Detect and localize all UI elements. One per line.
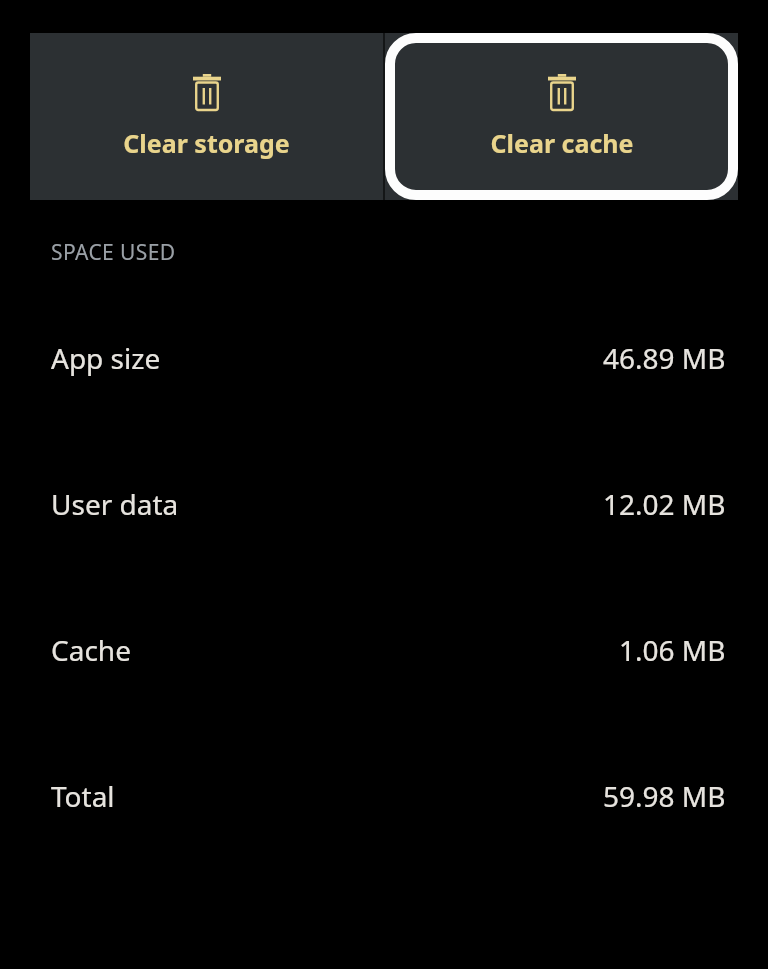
- staticText: Clear cache: [490, 126, 634, 160]
- button[interactable]: Clear cache: [385, 33, 738, 200]
- staticText: Total: [51, 777, 115, 815]
- button[interactable]: Total: [0, 723, 768, 869]
- other: Clear storage: [30, 33, 383, 200]
- staticText: 1.06 MB: [619, 631, 726, 669]
- staticText: 59.98 MB: [603, 777, 726, 815]
- staticText: User data: [51, 485, 179, 523]
- staticText: Clear storage: [123, 126, 290, 160]
- staticText: 46.89 MB: [603, 339, 726, 377]
- staticText: 12.02 MB: [603, 485, 726, 523]
- staticText: SPACE USED: [51, 238, 176, 267]
- button[interactable]: Clear storage: [30, 33, 383, 200]
- button[interactable]: User data: [0, 431, 768, 577]
- staticText: Cache: [51, 631, 131, 669]
- button[interactable]: App size: [0, 285, 768, 431]
- button[interactable]: Cache: [0, 577, 768, 723]
- other: Clear cache: [385, 33, 738, 200]
- staticText: App size: [51, 339, 161, 377]
